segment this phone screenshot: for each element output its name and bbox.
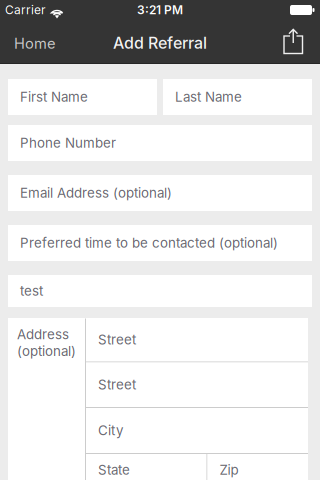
staticText: (optional) (17, 343, 76, 359)
button[interactable]: Preferred time to be contacted (optional… (8, 225, 312, 261)
staticText: State (98, 462, 130, 478)
staticText: 3:21 PM (137, 3, 183, 17)
staticText: test (20, 283, 43, 299)
button[interactable]: Phone Number (8, 125, 312, 161)
staticText: Home (14, 35, 56, 52)
button[interactable]: Email Address (optional) (8, 175, 312, 211)
staticText: Add Referral (113, 34, 207, 52)
button[interactable]: Street (86, 318, 308, 361)
staticText: Street (98, 377, 136, 393)
button[interactable]: Share (283, 20, 320, 63)
button[interactable]: Zip (207, 454, 308, 480)
button[interactable]: Street (86, 362, 308, 407)
staticText: Email Address (optional) (20, 185, 172, 201)
staticText: Phone Number (20, 135, 116, 151)
staticText: First Name (20, 89, 88, 105)
staticText: Address (17, 326, 69, 342)
staticText: Carrier (5, 3, 46, 17)
staticText: City (98, 423, 123, 438)
button[interactable]: City (86, 408, 308, 453)
staticText: Street (98, 332, 136, 348)
staticText: Preferred time to be contacted (optional… (20, 235, 278, 251)
button[interactable]: Last Name (163, 79, 312, 115)
button[interactable]: test (8, 275, 312, 307)
button[interactable]: State (86, 454, 206, 480)
staticText: Zip (219, 462, 238, 478)
button[interactable]: Home (0, 20, 56, 63)
button[interactable]: First Name (8, 79, 157, 115)
staticText: Last Name (175, 89, 242, 105)
